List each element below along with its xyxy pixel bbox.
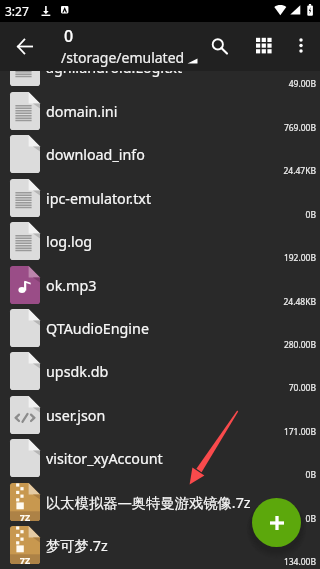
button[interactable]: user.json: [0, 396, 320, 436]
button[interactable]: Grid view: [251, 20, 275, 69]
button[interactable]: ipc-emulator.txt: [0, 179, 320, 219]
staticText: download_info: [46, 145, 145, 164]
staticText: ipc-emulator.txt: [46, 189, 152, 208]
staticText: 7Z: [10, 511, 40, 523]
staticText: user.json: [46, 406, 106, 425]
button[interactable]: visitor_xyAccount: [0, 439, 320, 479]
staticText: 7Z: [10, 554, 40, 566]
staticText: ok.mp3: [46, 276, 97, 295]
staticText: 0: [64, 25, 74, 47]
button[interactable]: Add: [252, 498, 301, 547]
staticText: 0B: [0, 469, 316, 481]
staticText: visitor_xyAccount: [46, 449, 163, 468]
staticText: 134.00B: [0, 556, 316, 568]
staticText: 70.00B: [0, 382, 316, 394]
staticText: 梦可梦.7z: [46, 536, 108, 556]
staticText: 192.00B: [0, 252, 316, 264]
button[interactable]: 7Z: [0, 526, 320, 566]
button[interactable]: domain.ini: [0, 92, 320, 132]
button[interactable]: agni.android.Log.txt: [0, 48, 320, 88]
button[interactable]: 0: [58, 25, 204, 69]
staticText: 171.00B: [0, 426, 316, 438]
button[interactable]: download_info: [0, 135, 320, 175]
staticText: 769.00B: [0, 122, 316, 134]
button[interactable]: upsdk.db: [0, 352, 320, 392]
staticText: log.log: [46, 232, 93, 251]
staticText: agni.android.Log.txt: [46, 58, 183, 77]
staticText: upsdk.db: [46, 362, 109, 381]
staticText: 24.47KB: [0, 165, 316, 177]
button[interactable]: ok.mp3: [0, 266, 320, 306]
staticText: QTAudioEngine: [46, 319, 149, 338]
staticText: /storage/emulated: [61, 48, 185, 67]
staticText: 3:27: [5, 3, 29, 19]
staticText: 以太模拟器—奥特曼游戏镜像.7z: [46, 493, 251, 513]
staticText: domain.ini: [46, 102, 118, 121]
staticText: 0B: [0, 209, 316, 221]
staticText: 24.48KB: [0, 296, 316, 308]
button[interactable]: More options: [291, 21, 311, 70]
button[interactable]: QTAudioEngine: [0, 309, 320, 349]
staticText: 49.00B: [0, 78, 316, 90]
button[interactable]: Search: [208, 21, 232, 70]
button[interactable]: Back: [3, 24, 47, 68]
staticText: 280.00B: [0, 339, 316, 351]
button[interactable]: log.log: [0, 222, 320, 262]
staticText: 0B: [0, 513, 316, 525]
button[interactable]: 7Z: [0, 483, 320, 523]
